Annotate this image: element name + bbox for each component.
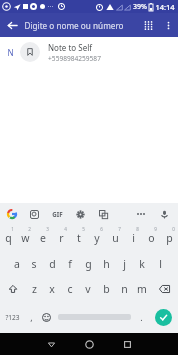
button[interactable]: q bbox=[0, 225, 17, 251]
staticText: d bbox=[49, 257, 56, 271]
button[interactable]: d bbox=[43, 251, 61, 276]
button[interactable]: Shift bbox=[0, 276, 26, 301]
button[interactable]: c bbox=[61, 276, 79, 301]
staticText: o bbox=[148, 231, 155, 245]
staticText: ?123 bbox=[5, 313, 20, 322]
button[interactable]: l bbox=[151, 251, 169, 276]
button[interactable]: w bbox=[17, 225, 34, 251]
button[interactable]: g bbox=[79, 251, 97, 276]
button[interactable]: b bbox=[97, 276, 115, 301]
staticText: x bbox=[49, 282, 55, 296]
staticText: 39% bbox=[133, 2, 147, 12]
staticText: a bbox=[14, 257, 20, 271]
button[interactable]: p bbox=[160, 225, 178, 251]
staticText: y bbox=[94, 231, 100, 245]
button[interactable]: Backspace bbox=[151, 276, 178, 301]
staticText: N bbox=[7, 47, 14, 58]
button[interactable]: y bbox=[88, 225, 106, 251]
button[interactable]: Emoji bbox=[38, 301, 55, 333]
staticText: 2 bbox=[28, 226, 31, 232]
button[interactable]: More bbox=[129, 203, 152, 225]
staticText: h bbox=[103, 257, 110, 271]
button[interactable]: h bbox=[97, 251, 115, 276]
button[interactable]: Google search bbox=[0, 203, 23, 225]
button[interactable]: Comma bbox=[24, 301, 38, 333]
button[interactable]: j bbox=[115, 251, 133, 276]
staticText: z bbox=[32, 282, 37, 296]
staticText: g bbox=[85, 257, 92, 271]
staticText: GIF bbox=[52, 210, 63, 218]
button[interactable]: Voice input bbox=[152, 203, 177, 225]
button[interactable]: Period bbox=[134, 301, 148, 333]
staticText: 4 bbox=[64, 226, 67, 232]
staticText: 7 bbox=[118, 226, 121, 232]
button[interactable]: Dialpad bbox=[137, 14, 159, 36]
button[interactable]: Settings bbox=[69, 203, 92, 225]
staticText: m bbox=[137, 282, 147, 296]
button[interactable]: Back bbox=[0, 13, 24, 37]
button[interactable]: Stickers bbox=[23, 203, 46, 225]
button[interactable]: Done bbox=[148, 301, 178, 333]
button[interactable]: Digite o nome ou número bbox=[24, 13, 137, 37]
button[interactable]: z bbox=[26, 276, 43, 301]
button[interactable]: More options bbox=[159, 16, 177, 34]
staticText: 14:14 bbox=[155, 2, 175, 12]
button[interactable]: a bbox=[8, 251, 25, 276]
staticText: p bbox=[166, 231, 173, 245]
button[interactable]: n bbox=[115, 276, 133, 301]
button[interactable]: Recent apps bbox=[108, 333, 146, 355]
button[interactable]: x bbox=[43, 276, 61, 301]
button[interactable]: Translate bbox=[92, 203, 115, 225]
staticText: Note to Self bbox=[48, 42, 92, 53]
staticText: l bbox=[159, 257, 162, 271]
button[interactable]: t bbox=[70, 225, 88, 251]
staticText: w bbox=[21, 231, 30, 245]
staticText: 5 bbox=[82, 226, 85, 232]
staticText: t bbox=[77, 231, 81, 245]
staticText: n bbox=[121, 282, 128, 296]
staticText: Digite o nome ou número bbox=[24, 20, 124, 31]
button[interactable]: GIF bbox=[46, 203, 69, 225]
staticText: s bbox=[31, 257, 37, 271]
staticText: c bbox=[67, 282, 73, 296]
staticText: b bbox=[103, 282, 110, 296]
staticText: 8 bbox=[136, 226, 139, 232]
button[interactable]: v bbox=[79, 276, 97, 301]
button[interactable]: u bbox=[106, 225, 124, 251]
staticText: +5598984259587 bbox=[48, 54, 101, 63]
staticText: u bbox=[112, 231, 119, 245]
staticText: v bbox=[85, 282, 91, 296]
staticText: f bbox=[68, 257, 72, 271]
staticText: 9 bbox=[154, 226, 157, 232]
button[interactable]: i bbox=[124, 225, 142, 251]
button[interactable]: ?123 bbox=[0, 301, 24, 333]
staticText: 6 bbox=[100, 226, 103, 232]
staticText: 0 bbox=[172, 226, 175, 232]
staticText: k bbox=[139, 257, 145, 271]
button[interactable]: s bbox=[25, 251, 43, 276]
staticText: 1 bbox=[11, 226, 14, 232]
staticText: r bbox=[59, 231, 64, 245]
button[interactable]: Space bbox=[55, 301, 134, 333]
button[interactable]: e bbox=[34, 225, 52, 251]
staticText: q bbox=[5, 231, 12, 245]
staticText: . bbox=[140, 311, 143, 323]
button[interactable]: k bbox=[133, 251, 151, 276]
button[interactable]: o bbox=[142, 225, 160, 251]
staticText: , bbox=[30, 311, 33, 323]
staticText: e bbox=[40, 231, 46, 245]
button[interactable]: N bbox=[0, 37, 178, 67]
button[interactable]: m bbox=[133, 276, 151, 301]
button[interactable]: r bbox=[52, 225, 70, 251]
button[interactable]: Back bbox=[32, 333, 70, 355]
button[interactable]: f bbox=[61, 251, 79, 276]
staticText: j bbox=[123, 257, 126, 271]
staticText: 3 bbox=[46, 226, 49, 232]
staticText: i bbox=[132, 231, 135, 245]
button[interactable]: Home bbox=[70, 333, 108, 355]
